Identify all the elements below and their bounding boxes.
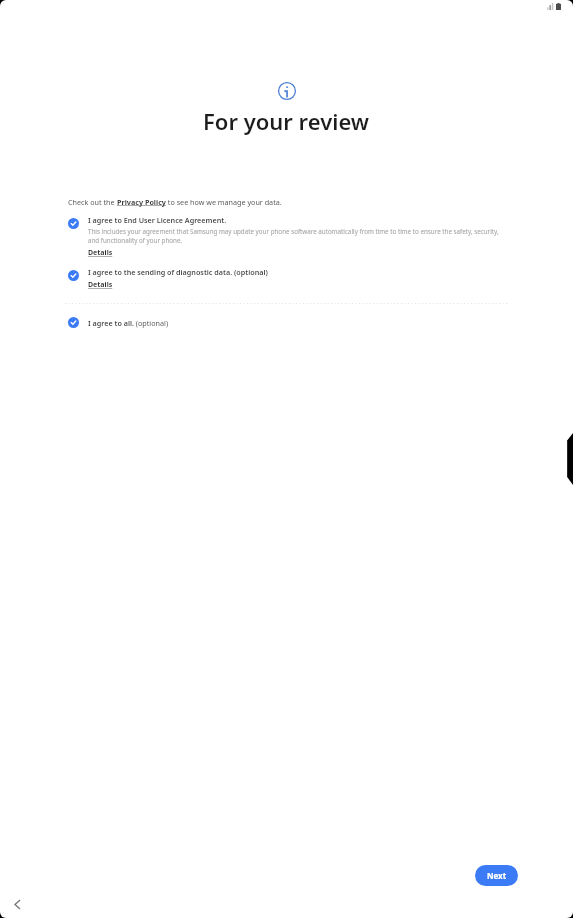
staticText: For your review — [203, 106, 370, 136]
button[interactable]: I agree to all, checked — [68, 317, 79, 328]
staticText: Next — [487, 870, 507, 881]
button[interactable]: Checked — [68, 267, 511, 290]
staticText: This includes your agreement that Samsun… — [88, 227, 511, 245]
button[interactable]: Details — [88, 248, 113, 258]
staticText: I agree to the sending of diagnostic dat… — [88, 267, 268, 277]
staticText: Check out the — [68, 197, 117, 207]
button[interactable]: Back — [6, 893, 28, 915]
button[interactable]: Checked — [68, 215, 511, 258]
button[interactable]: Next — [475, 865, 518, 886]
staticText: to see how we manage your data. — [166, 197, 282, 207]
staticText: I agree to all. (optional) — [88, 318, 169, 328]
staticText: I agree to End User Licence Agreement. — [88, 215, 227, 225]
button[interactable]: Privacy Policy — [117, 197, 166, 207]
button[interactable]: Checked — [68, 218, 79, 229]
button[interactable]: Checked — [68, 270, 79, 281]
button[interactable]: I agree to all, checked — [68, 317, 169, 328]
button[interactable]: Details — [88, 280, 113, 290]
